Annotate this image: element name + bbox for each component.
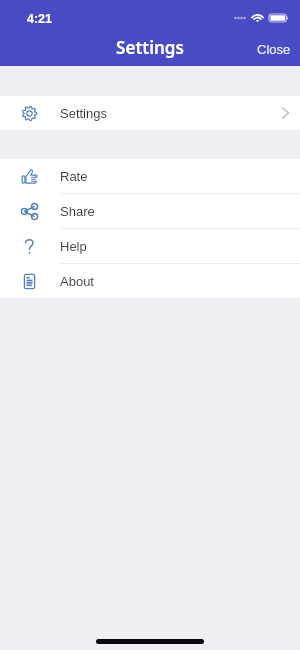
button[interactable]: Close — [247, 38, 300, 62]
staticText: Help — [60, 239, 87, 254]
button[interactable]: Settings — [0, 96, 300, 130]
staticText: Share — [60, 204, 95, 219]
button[interactable]: Rate — [0, 159, 300, 193]
staticText: 4:21 — [27, 12, 53, 26]
staticText: Close — [257, 42, 291, 57]
button[interactable]: Share — [0, 194, 300, 228]
button[interactable]: Help — [0, 229, 300, 263]
staticText: Settings — [0, 36, 300, 59]
button[interactable]: About — [0, 264, 300, 298]
staticText: Rate — [60, 169, 88, 184]
staticText: About — [60, 274, 94, 289]
staticText: Settings — [60, 106, 107, 121]
other: Open settings — [278, 106, 292, 120]
